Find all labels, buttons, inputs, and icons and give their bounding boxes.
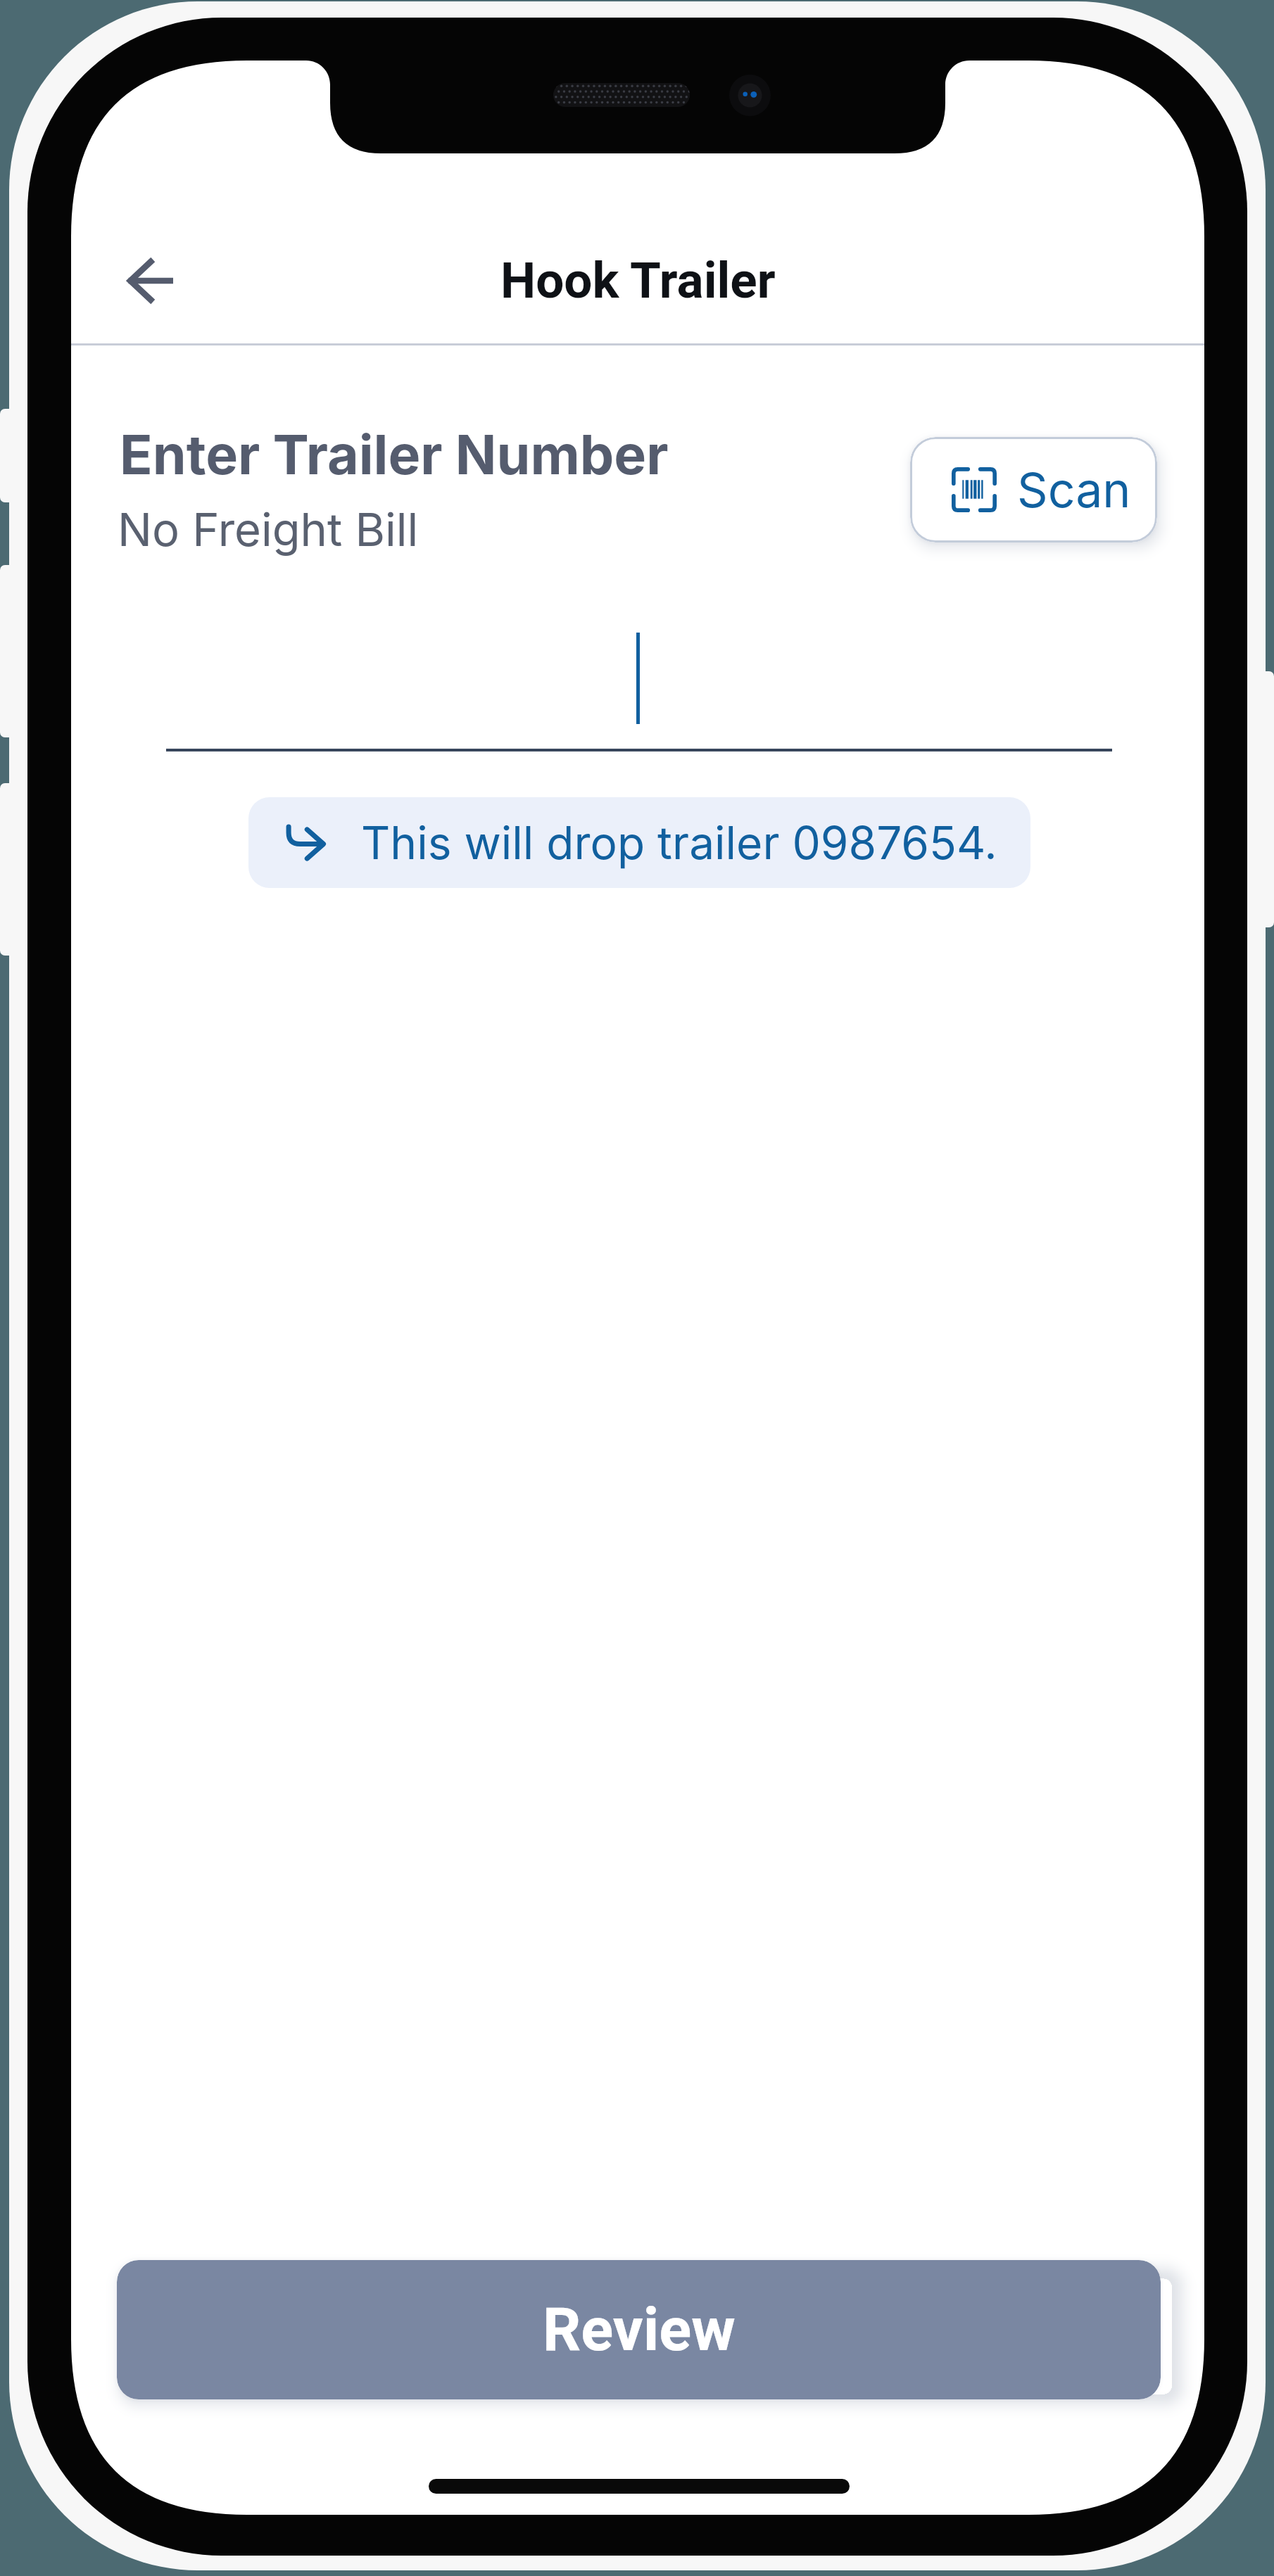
staticText: Review bbox=[543, 2295, 736, 2365]
staticText: Scan bbox=[1017, 461, 1131, 519]
button[interactable]: Scan bbox=[910, 437, 1157, 543]
staticText: This will drop trailer 0987654. bbox=[361, 816, 997, 870]
button[interactable]: Back bbox=[106, 236, 194, 325]
staticText: Hook Trailer bbox=[500, 251, 776, 310]
staticText: Enter Trailer Number bbox=[120, 421, 669, 487]
staticText: No Freight Bill bbox=[118, 502, 419, 557]
button[interactable]: This will drop trailer 0987654. bbox=[248, 797, 1030, 888]
button[interactable]: Review bbox=[117, 2260, 1161, 2399]
